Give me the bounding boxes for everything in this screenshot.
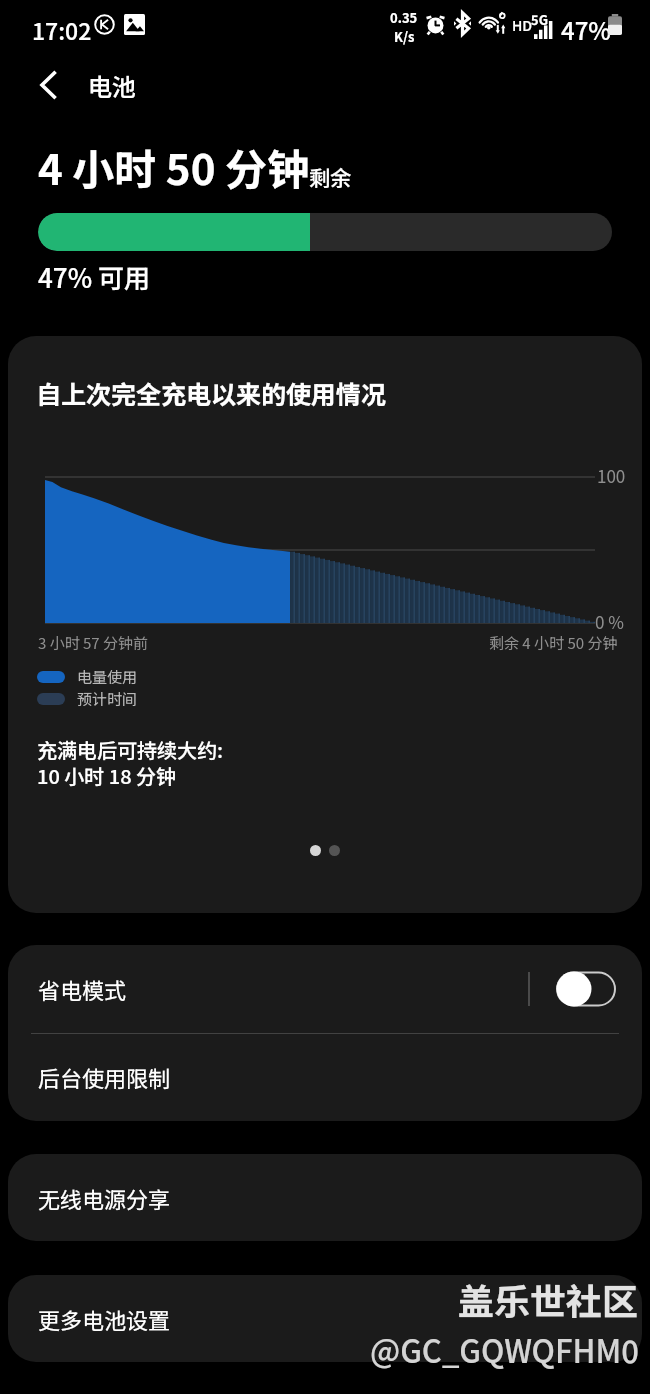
staticText: 0.35	[390, 8, 418, 27]
staticText: 省电模式	[38, 973, 127, 1005]
staticText: 3 小时 57 分钟前	[38, 632, 149, 654]
staticText: 盖乐世社区	[458, 1273, 639, 1325]
staticText: 后台使用限制	[38, 1061, 171, 1093]
staticText: 无线电源分享	[38, 1182, 171, 1214]
staticText: 更多电池设置	[38, 1303, 171, 1335]
staticText: 5G	[531, 10, 548, 29]
staticText: 充满电后可持续大约:	[37, 735, 223, 764]
staticText: 电池	[88, 68, 136, 103]
staticText: 17:02	[32, 13, 92, 46]
staticText: HD	[512, 15, 533, 35]
staticText: 47% 可用	[38, 258, 150, 296]
staticText: 100	[597, 463, 626, 488]
staticText: 剩余	[309, 162, 351, 192]
button[interactable]: Back	[14, 54, 84, 116]
button[interactable]: 后台使用限制	[8, 1033, 642, 1121]
button[interactable]: 更多电池设置	[8, 1275, 642, 1362]
staticText: 47%	[561, 12, 611, 47]
staticText: 10 小时 18 分钟	[37, 761, 177, 790]
button[interactable]: 无线电源分享	[8, 1154, 642, 1241]
staticText: 剩余 4 小时 50 分钟	[489, 632, 618, 654]
staticText: 自上次完全充电以来的使用情况	[36, 375, 387, 411]
staticText: 4 小时 50 分钟	[38, 136, 309, 197]
staticText: 电量使用	[77, 666, 138, 688]
staticText: 预计时间	[77, 688, 138, 710]
staticText: 0 %	[595, 609, 624, 634]
staticText: K/s	[394, 27, 415, 46]
staticText: @GC_GQWQFHM0	[370, 1327, 639, 1372]
button[interactable]: 省电模式	[8, 945, 642, 1033]
